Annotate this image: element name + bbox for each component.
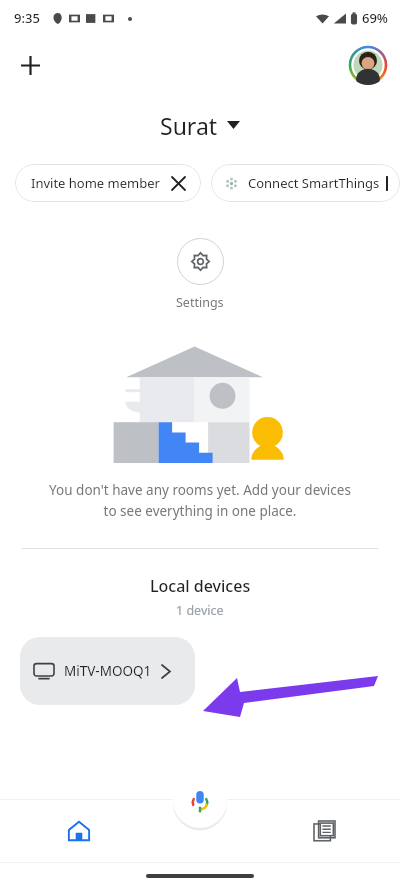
staticText: Connect SmartThings [248,174,380,192]
staticText: 1 device [176,602,224,619]
staticText: MiTV-MOOQ1 [64,662,152,680]
button[interactable]: Surat [154,108,246,142]
button[interactable]: Feed [300,807,348,855]
button[interactable]: Invite home member [15,164,201,202]
staticText: 9:35 [14,9,40,27]
staticText: Surat [160,110,218,140]
button[interactable]: MiTV-MOOQ1 [20,637,195,705]
button[interactable]: Account [348,45,388,85]
button[interactable]: Home [55,807,103,855]
button[interactable]: Google Assistant [173,774,227,828]
button[interactable]: Settings [172,234,228,315]
staticText: You don't have any rooms yet. Add your d… [30,481,370,520]
button[interactable]: Add [10,45,50,85]
staticText: Invite home member [31,174,160,192]
staticText: Settings [176,294,224,311]
staticText: Local devices [150,575,251,597]
button[interactable]: Connect SmartThings [211,164,400,202]
staticText: 69% [362,9,388,27]
